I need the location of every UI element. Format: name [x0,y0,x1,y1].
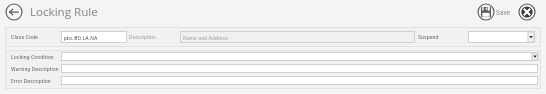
staticText: Save [496,8,511,17]
staticText: Name and Address [183,34,228,41]
staticText: pbs.BO.LA.NA [64,34,98,41]
button[interactable]: pbs.BO.LA.NA [61,31,127,43]
button[interactable] [468,31,535,43]
staticText: Suspend [418,33,439,40]
button[interactable]: Name and Address [180,31,415,43]
staticText: Description [129,33,156,40]
button[interactable] [61,76,538,85]
button[interactable]: Close [518,3,536,21]
button[interactable]: Back [5,3,23,21]
staticText: Class Code [11,33,38,40]
button[interactable] [61,52,538,61]
staticText: Locking Rule [30,4,98,20]
staticText: Warning Description [11,65,59,72]
staticText: Locking Condition [11,53,54,60]
button[interactable]: Save [477,3,510,21]
button[interactable] [61,64,538,73]
staticText: Error Description [11,77,51,84]
